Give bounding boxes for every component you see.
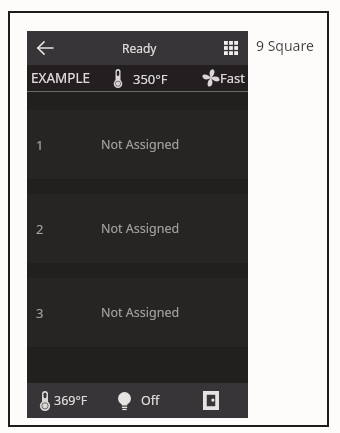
staticText: 369°F [54,392,88,409]
button[interactable]: Oven door [187,383,235,418]
staticText: Fast [220,69,245,87]
staticText: 2 [36,220,44,238]
staticText: 3 [36,304,44,322]
staticText: Off [141,392,160,409]
button[interactable]: 3 [27,278,248,347]
button[interactable]: 2 [27,194,248,263]
staticText: 350°F [133,70,168,88]
button[interactable]: 1 [27,110,248,179]
staticText: Not Assigned [101,304,180,321]
button[interactable]: Apps grid [216,31,248,65]
staticText: 1 [36,136,44,154]
button[interactable]: 369°F [27,383,94,418]
staticText: Not Assigned [101,220,180,237]
button[interactable]: Off [118,383,160,418]
staticText: EXAMPLE [31,69,91,87]
button[interactable]: Back [27,31,57,65]
staticText: Ready [122,40,157,56]
staticText: 9 Square [256,36,314,55]
staticText: Not Assigned [101,136,180,153]
